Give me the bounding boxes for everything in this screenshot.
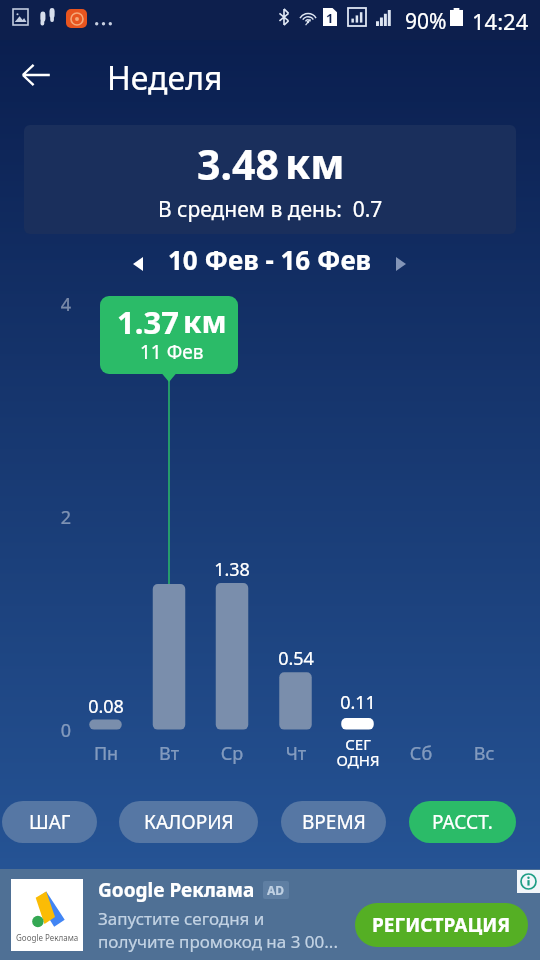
staticText: 1.37 — [117, 301, 179, 343]
staticText: 10 Фев - 16 Фев — [168, 242, 372, 277]
staticText: Google Реклама — [98, 877, 255, 903]
staticText: ВРЕМЯ — [302, 809, 366, 835]
staticText: 2 — [46, 505, 86, 530]
staticText: Вс — [444, 741, 524, 766]
staticText: 14:24 — [472, 6, 529, 36]
button[interactable]: РАССТ. — [409, 801, 516, 843]
staticText: AD — [267, 882, 285, 898]
button[interactable]: Previous week — [118, 244, 158, 284]
staticText: 0.11 — [318, 690, 398, 715]
staticText: 0.54 — [256, 646, 336, 671]
staticText: 1.38 — [192, 557, 272, 582]
staticText: получите промокод на 3 00... — [98, 930, 338, 953]
staticText: км — [285, 135, 345, 191]
staticText: 11 Фев — [140, 339, 204, 365]
staticText: СЕГ ОДНЯ — [313, 734, 403, 770]
staticText: ШАГ — [29, 809, 71, 835]
staticText: Сб — [381, 741, 461, 766]
staticText: Вт — [129, 741, 209, 766]
staticText: 3.48 — [197, 136, 279, 192]
staticText: РЕГИСТРАЦИЯ — [372, 912, 511, 938]
button[interactable]: ВРЕМЯ — [281, 801, 386, 843]
button[interactable]: Next week — [381, 244, 421, 284]
button[interactable]: ШАГ — [2, 801, 97, 843]
staticText: Ср — [192, 741, 272, 766]
staticText: Google Реклама — [16, 932, 79, 943]
staticText: Чт — [256, 741, 336, 766]
staticText: 1 — [326, 9, 334, 27]
staticText: 4 — [46, 292, 86, 317]
button[interactable]: Ad info — [517, 870, 540, 893]
staticText: 90% — [405, 7, 447, 36]
button[interactable]: КАЛОРИЯ — [119, 801, 258, 843]
staticText: 0.08 — [66, 694, 146, 719]
staticText: Неделя — [107, 56, 223, 100]
staticText: Запустите сегодня и — [98, 907, 265, 930]
staticText: км — [183, 301, 227, 342]
staticText: КАЛОРИЯ — [144, 809, 234, 835]
staticText: РАССТ. — [432, 809, 493, 835]
button[interactable]: Back — [13, 52, 59, 98]
staticText: Пн — [66, 741, 146, 766]
staticText: В среднем в день: 0.7 — [158, 195, 383, 224]
button[interactable]: 3.48 — [24, 125, 516, 234]
staticText: 0 — [46, 718, 86, 743]
button[interactable]: РЕГИСТРАЦИЯ — [355, 903, 528, 947]
